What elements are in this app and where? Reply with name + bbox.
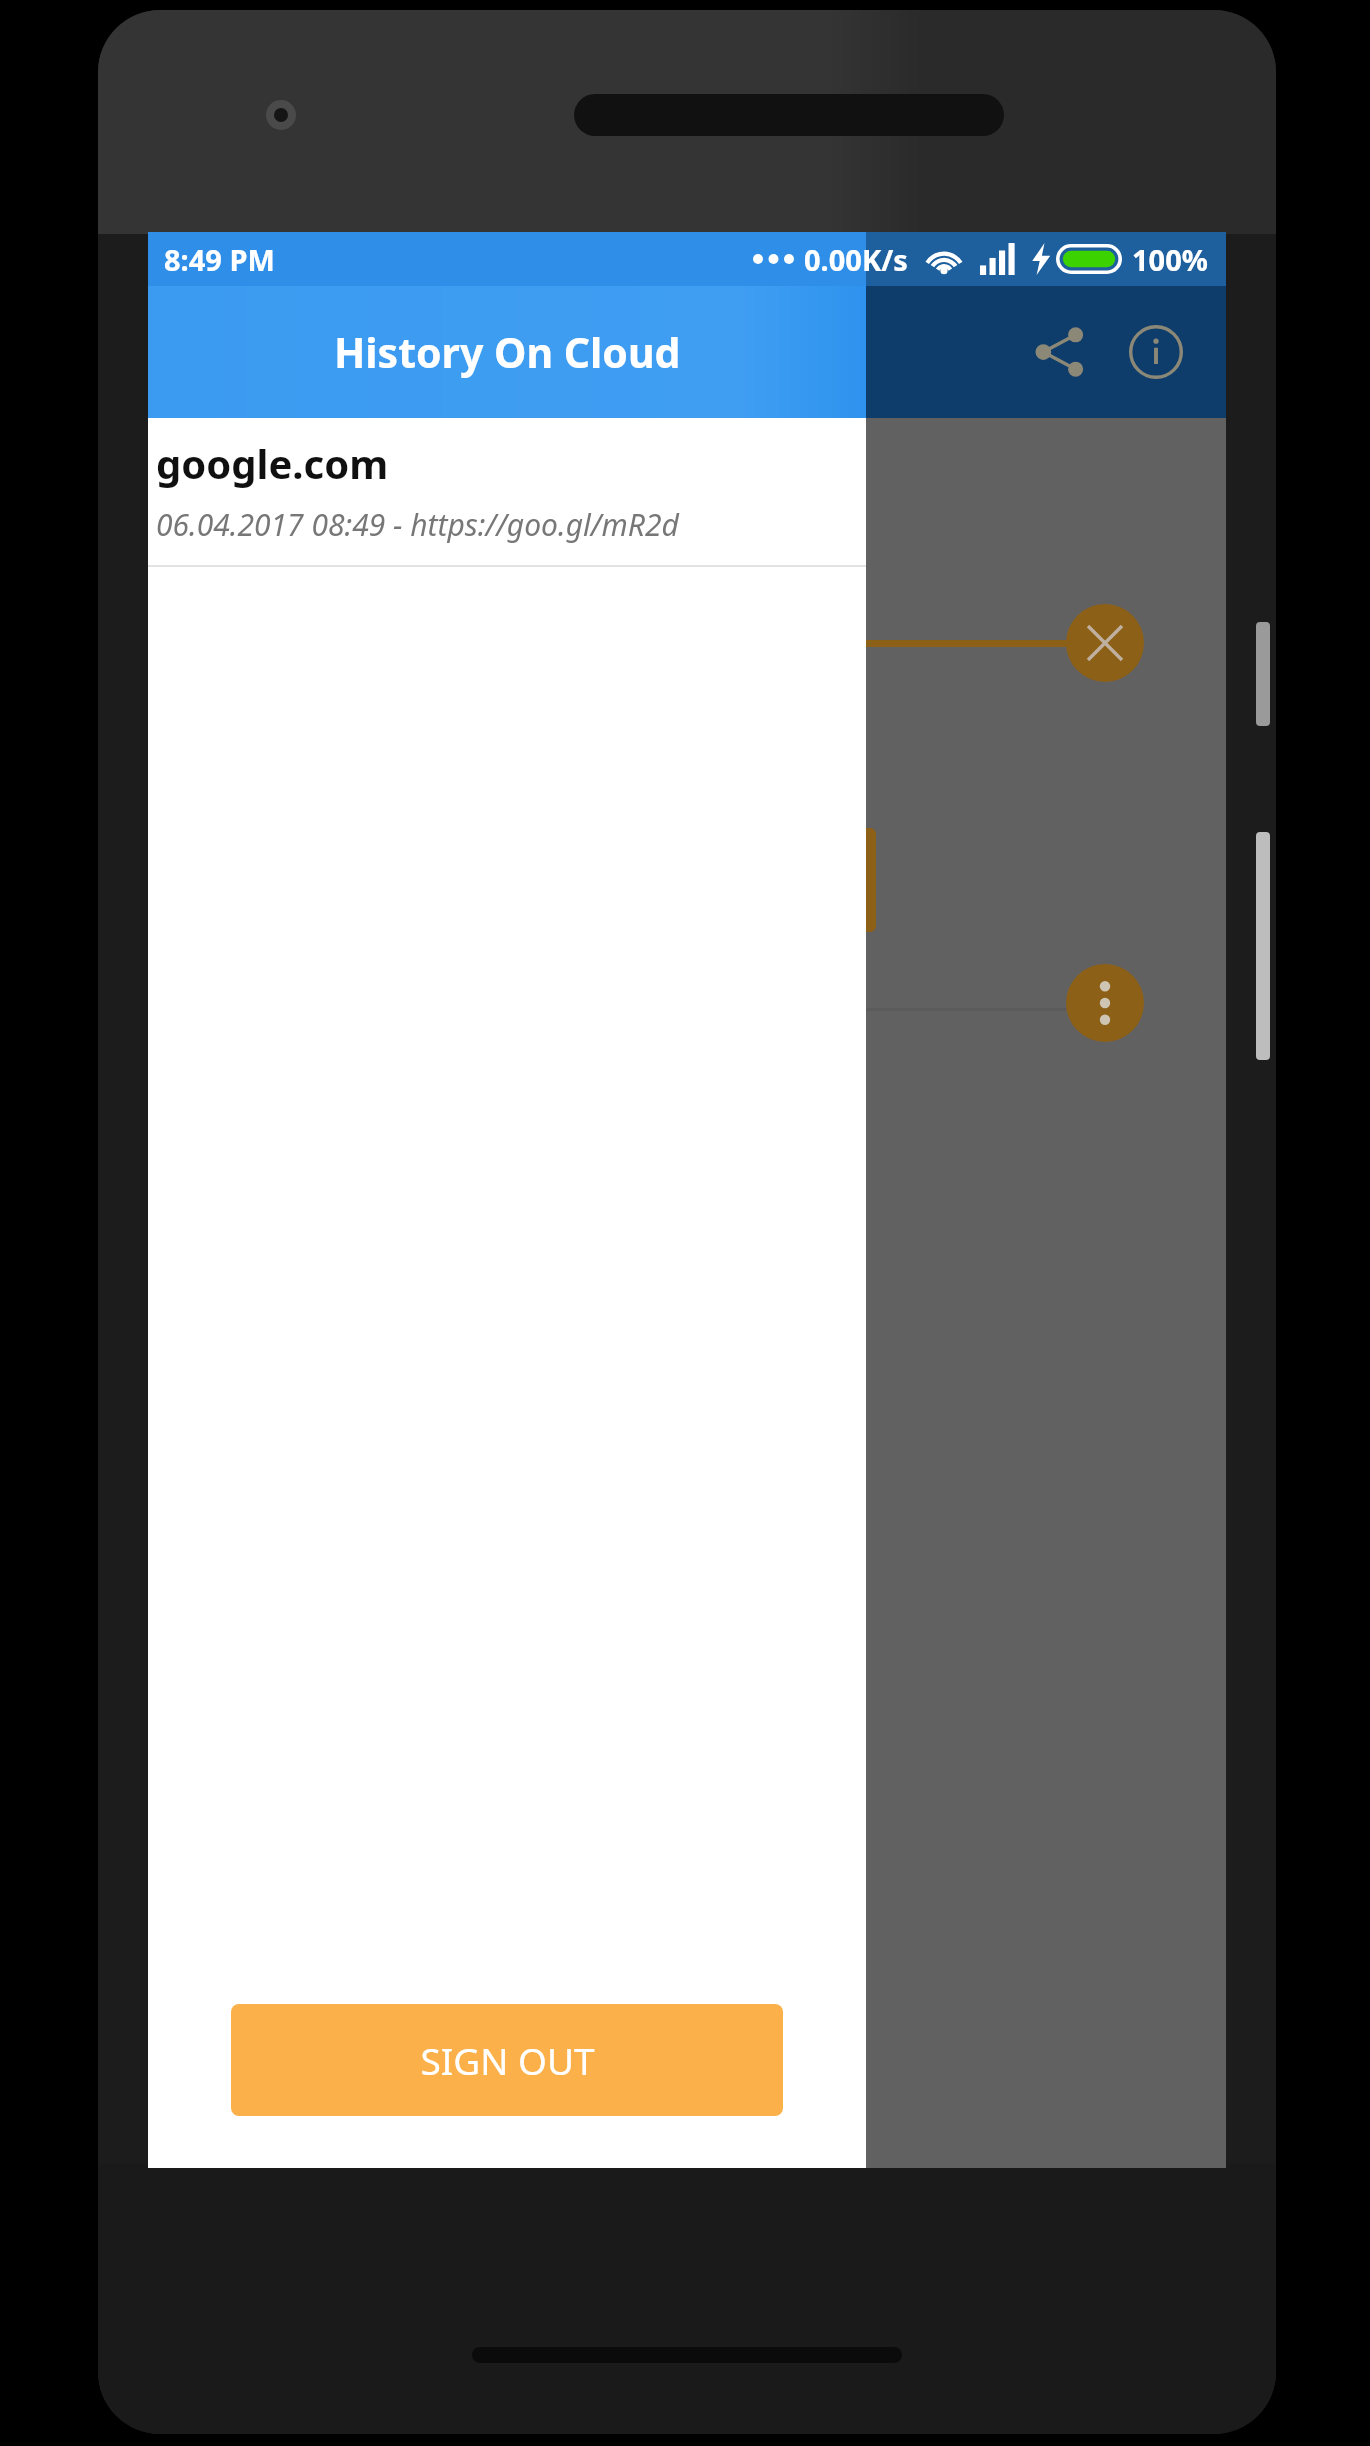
button[interactable]: More options [1066,964,1144,1042]
button[interactable]: Close [1066,604,1144,682]
staticText: 06.04.2017 08:49 - https://goo.gl/mR2d [156,504,679,545]
staticText: History On Cloud [334,324,681,380]
button[interactable] [708,828,876,932]
button[interactable]: Info [1108,304,1204,400]
button[interactable]: SIGN OUT [231,2004,783,2116]
staticText: 8:49 PM [164,240,275,279]
staticText: 0.00K/s [804,240,908,279]
button[interactable]: Share [1012,304,1108,400]
staticText: 100% [1132,240,1208,279]
staticText: google.com [156,436,389,490]
button[interactable]: google.com [148,418,866,565]
staticText: SIGN OUT [420,2035,595,2085]
